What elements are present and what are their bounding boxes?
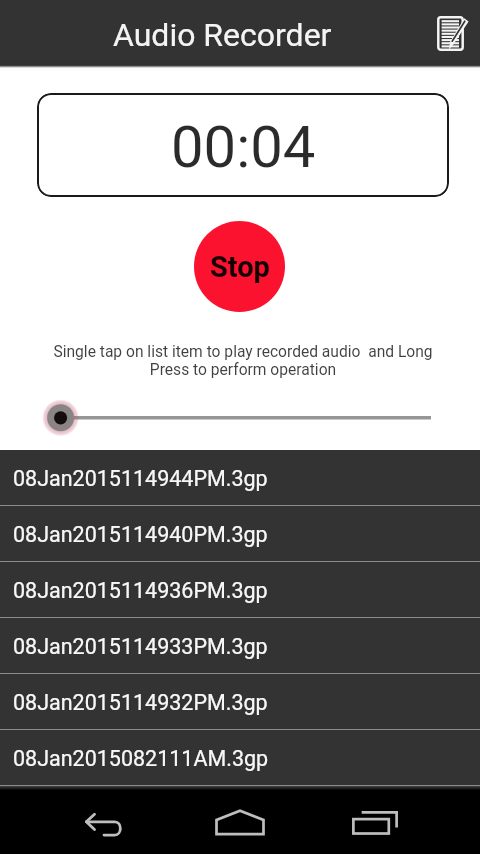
button[interactable]: 08Jan2015114940PM.3gp: [0, 506, 480, 562]
button[interactable]: 08Jan2015114932PM.3gp: [0, 674, 480, 730]
button[interactable]: 08Jan2015114936PM.3gp: [0, 562, 480, 618]
button[interactable]: Recent apps: [342, 790, 408, 854]
staticText: 08Jan2015114940PM.3gp: [13, 522, 268, 547]
staticText: Stop: [210, 250, 270, 284]
staticText: Audio Recorder: [113, 16, 332, 54]
staticText: 08Jan2015114932PM.3gp: [13, 690, 268, 715]
button[interactable]: Stop: [194, 221, 285, 312]
button[interactable]: 08Jan2015114933PM.3gp: [0, 618, 480, 674]
button[interactable]: Back: [70, 790, 136, 854]
button[interactable]: Home: [207, 790, 273, 854]
staticText: 00:04: [171, 113, 316, 181]
staticText: 08Jan2015114936PM.3gp: [13, 578, 268, 603]
button[interactable]: 08Jan2015082111AM.3gp: [0, 730, 480, 786]
staticText: 08Jan2015082111AM.3gp: [13, 746, 269, 771]
staticText: 08Jan2015114944PM.3gp: [13, 466, 268, 491]
button[interactable]: New recording: [431, 11, 475, 55]
staticText: Single tap on list item to play recorded…: [47, 343, 439, 379]
button[interactable]: 08Jan2015114944PM.3gp: [0, 450, 480, 506]
button[interactable]: Playback position: [0, 397, 480, 437]
staticText: 08Jan2015114933PM.3gp: [13, 634, 268, 659]
